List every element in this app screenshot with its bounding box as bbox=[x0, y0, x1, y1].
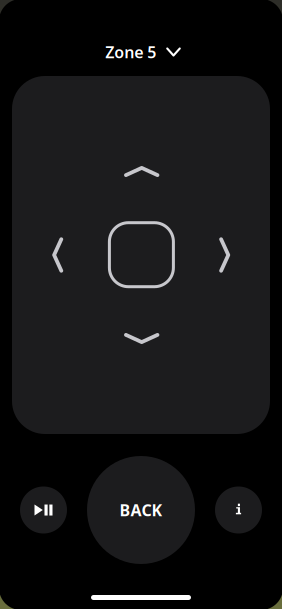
button[interactable]: BACK bbox=[87, 456, 195, 564]
button[interactable]: Play Pause bbox=[20, 486, 67, 533]
staticText: Zone 5 bbox=[105, 41, 156, 63]
staticText: BACK bbox=[119, 499, 162, 521]
button[interactable]: Zone 5 bbox=[0, 42, 282, 62]
button[interactable]: Info bbox=[215, 486, 262, 533]
